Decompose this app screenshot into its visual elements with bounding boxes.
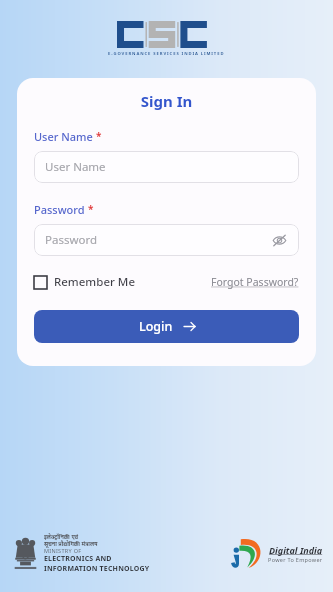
staticText: Digital India — [269, 544, 323, 556]
button[interactable]: Login — [34, 310, 299, 343]
staticText: * — [88, 202, 94, 216]
button[interactable]: Forgot Password? — [211, 273, 299, 291]
staticText: Remember Me — [54, 274, 135, 290]
button[interactable]: Show password — [270, 231, 288, 249]
staticText: इलेक्ट्रॉनिकी एवं — [44, 533, 79, 540]
staticText: User Name — [45, 159, 106, 175]
staticText: INFORMATION TECHNOLOGY — [44, 564, 150, 574]
staticText: ELECTRONICS AND — [44, 554, 112, 564]
button[interactable]: Remember Me — [34, 272, 135, 292]
staticText: MINISTRY OF — [44, 547, 82, 554]
staticText: Login — [139, 318, 173, 335]
button[interactable]: Password — [34, 224, 299, 256]
staticText: Sign In — [34, 91, 299, 111]
button[interactable]: User Name — [34, 151, 299, 183]
staticText: Forgot Password? — [211, 275, 299, 289]
staticText: E-GOVERNANCE SERVICES INDIA LIMITED — [108, 51, 225, 57]
staticText: * — [96, 129, 102, 143]
staticText: User Name — [34, 129, 93, 144]
staticText: Password — [34, 202, 85, 217]
staticText: Power To Empower — [268, 556, 323, 563]
staticText: सूचना प्रौद्योगिकी मंत्रालय — [44, 540, 98, 547]
staticText: Password — [45, 232, 98, 248]
